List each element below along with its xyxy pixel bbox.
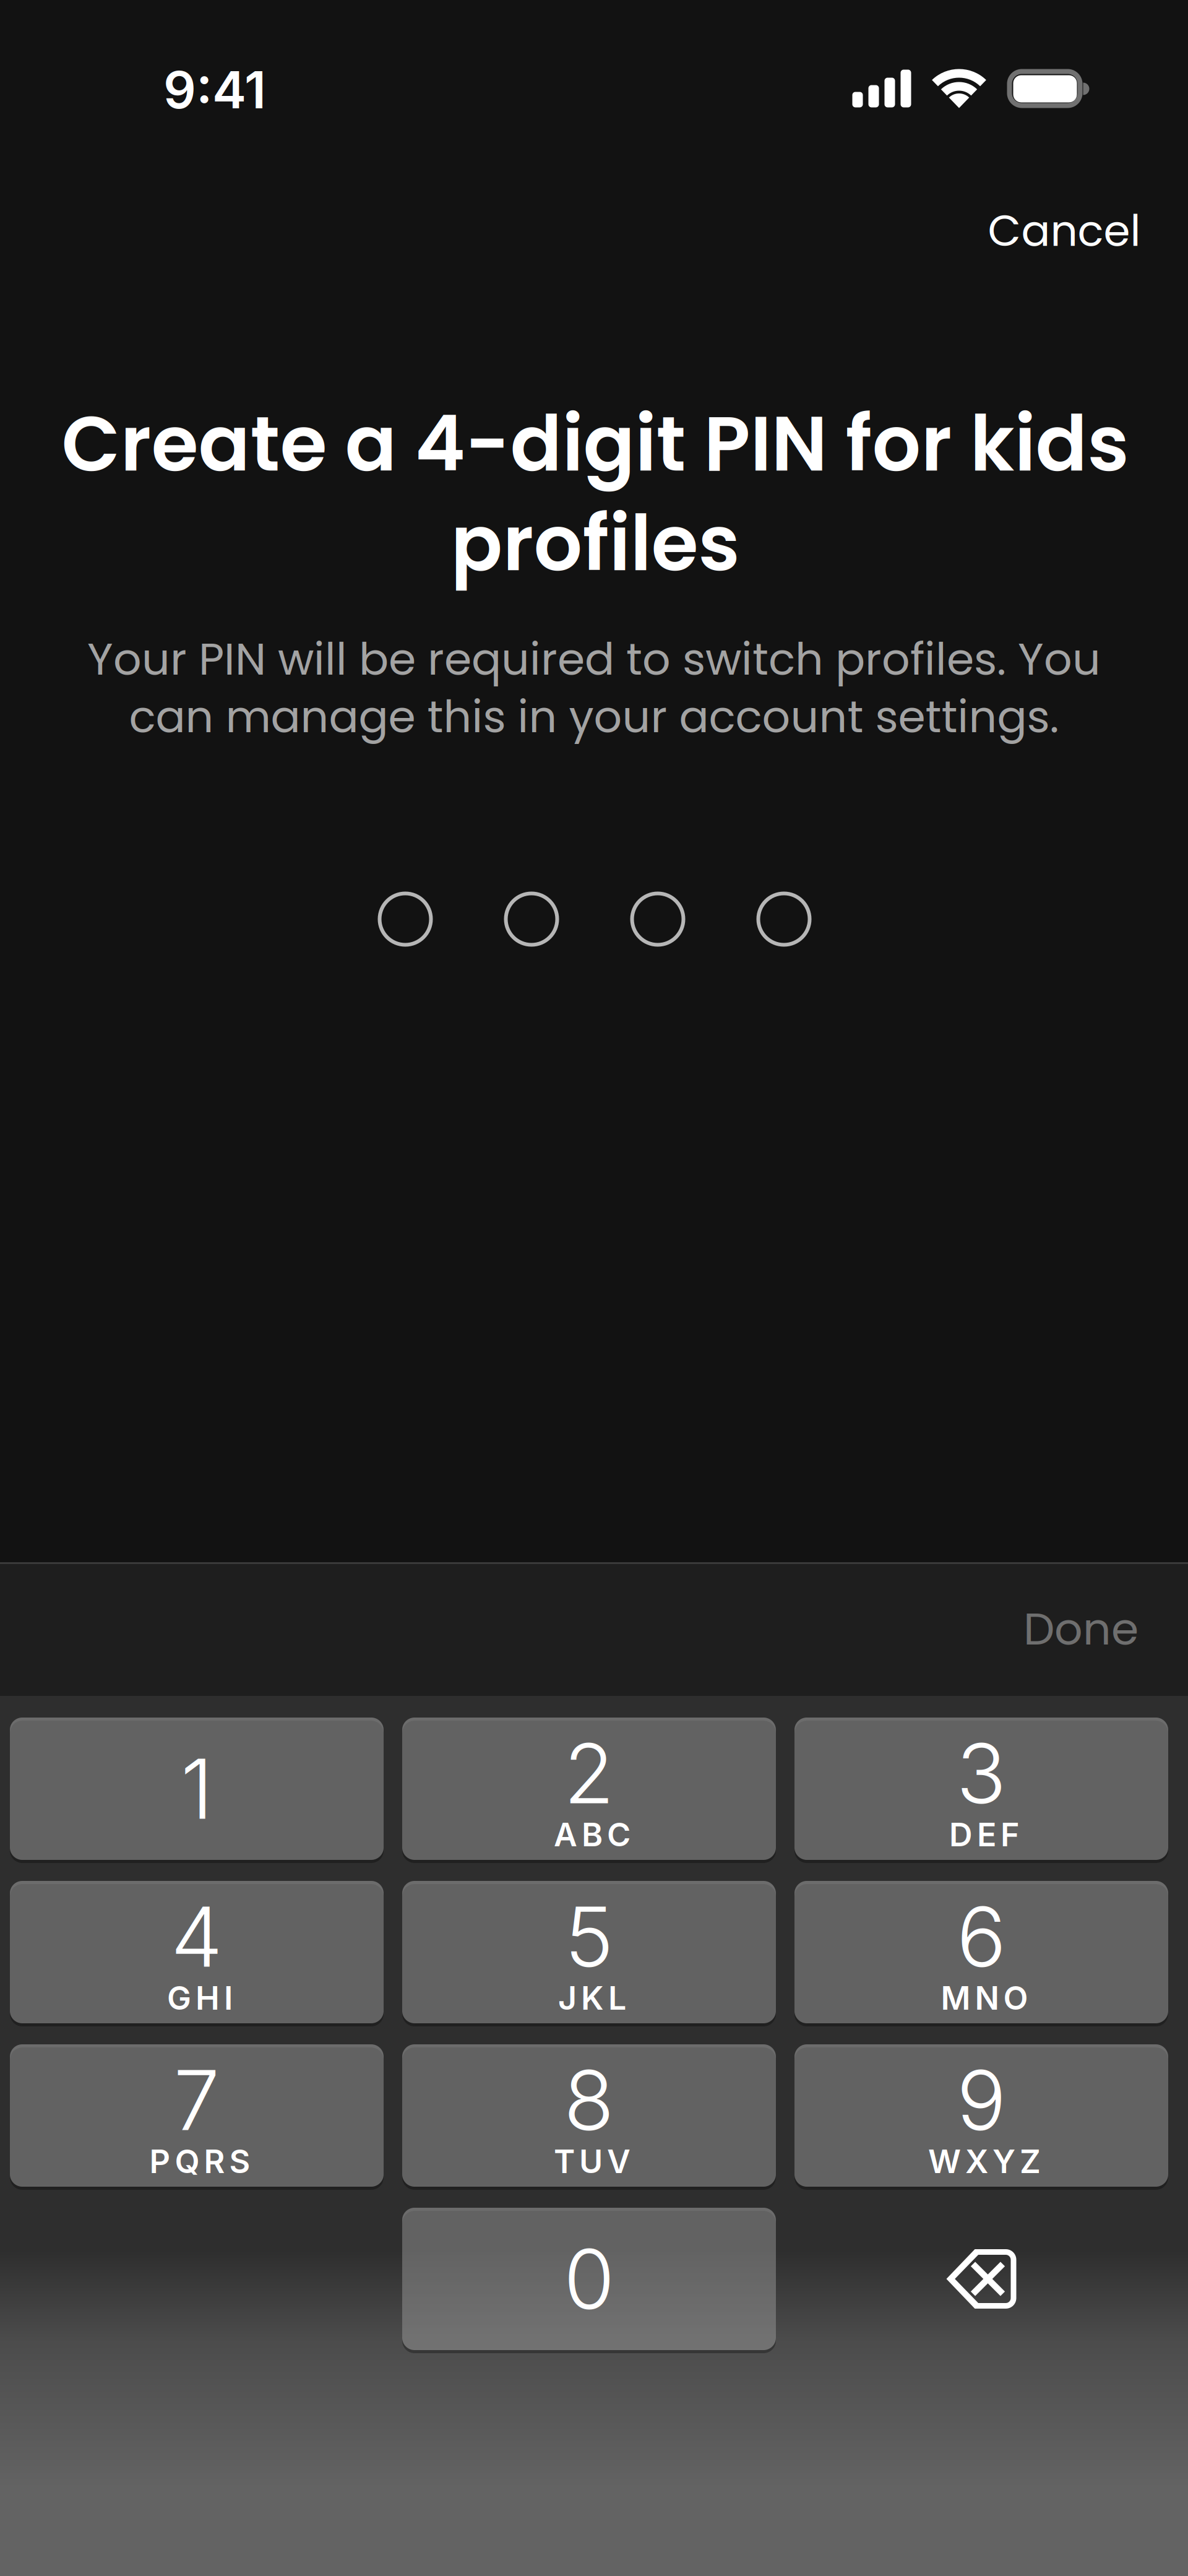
button[interactable]: 1 (10, 1718, 384, 1860)
staticText: 5 (565, 1887, 613, 1987)
button[interactable]: 2 (402, 1718, 776, 1860)
staticText: 3 (956, 1723, 1006, 1823)
staticText: MNO (941, 1978, 1028, 2017)
button[interactable]: 4 (10, 1881, 384, 2023)
button[interactable]: 6 (794, 1881, 1168, 2023)
staticText: WXYZ (928, 2142, 1041, 2181)
button[interactable]: Done (1005, 1576, 1157, 1682)
staticText: Your PIN will be required to switch prof… (87, 628, 1101, 690)
staticText: 1 (181, 1739, 213, 1839)
staticText: Create a 4-digit PIN for kids (62, 390, 1129, 497)
staticText: 7 (174, 2050, 220, 2150)
staticText: 9 (957, 2050, 1006, 2150)
staticText: 6 (957, 1887, 1006, 1987)
button[interactable]: Delete (794, 2208, 1168, 2350)
staticText: ABC (554, 1815, 631, 1854)
button[interactable]: Cancel (971, 186, 1158, 276)
button[interactable]: 3 (794, 1718, 1168, 1860)
staticText: Done (1023, 1598, 1138, 1660)
button[interactable]: 7 (10, 2044, 384, 2187)
staticText: 4 (171, 1887, 223, 1987)
staticText: 2 (564, 1723, 614, 1823)
staticText: JKL (558, 1978, 626, 2017)
button[interactable]: 8 (402, 2044, 776, 2187)
button[interactable]: 5 (402, 1881, 776, 2023)
staticText: 9:41 (163, 59, 266, 121)
staticText: PQRS (149, 2142, 250, 2181)
staticText: TUV (554, 2142, 631, 2181)
staticText: 8 (564, 2050, 614, 2150)
staticText: 0 (564, 2229, 614, 2329)
staticText: DEF (949, 1815, 1020, 1854)
button[interactable]: 9 (794, 2044, 1168, 2187)
staticText: profiles (451, 490, 740, 597)
staticText: can manage this in your account settings… (129, 686, 1059, 748)
button[interactable]: 0 (402, 2208, 776, 2350)
staticText: Cancel (988, 201, 1141, 261)
staticText: GHI (167, 1978, 233, 2017)
